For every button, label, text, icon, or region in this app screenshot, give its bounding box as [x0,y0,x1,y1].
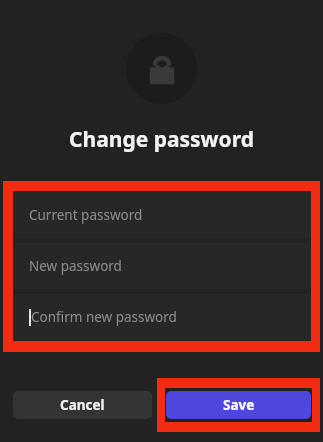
button[interactable]: Confirm new password [13,294,311,340]
staticText: New password [29,257,122,275]
staticText: Change password [69,125,254,154]
button[interactable]: New password [13,243,311,289]
button[interactable]: Cancel [13,391,152,419]
staticText: Save [223,396,255,414]
button[interactable]: Current password [13,192,311,238]
staticText: Cancel [60,396,105,414]
button[interactable]: Save [166,391,311,419]
staticText: Current password [29,206,143,224]
staticText: Confirm new password [31,308,177,326]
